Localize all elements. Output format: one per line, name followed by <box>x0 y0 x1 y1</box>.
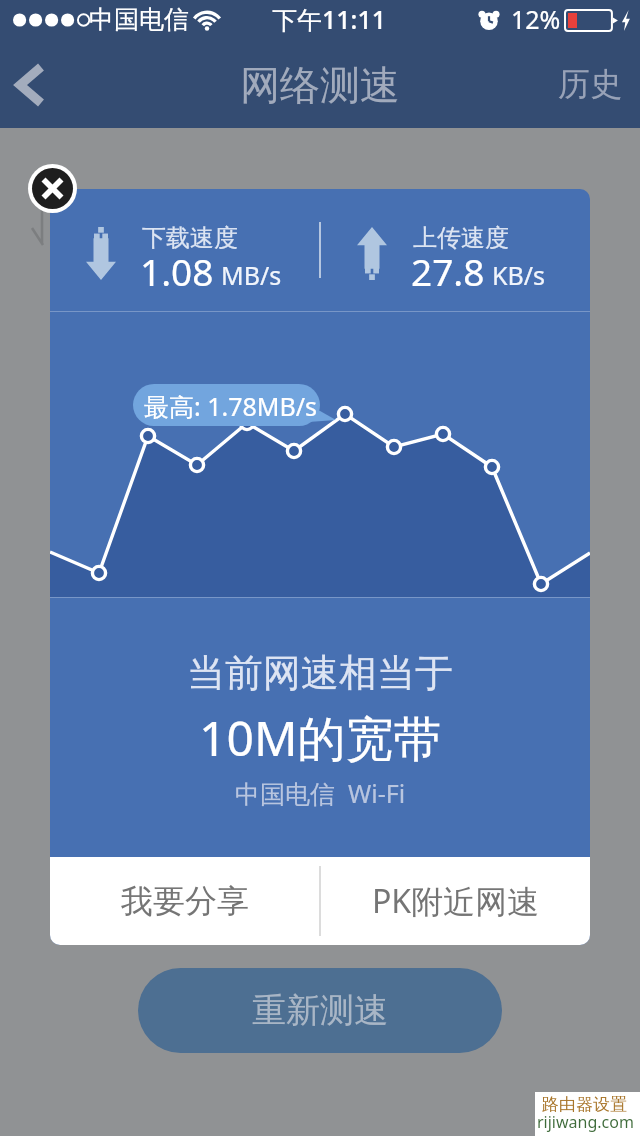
staticText: 当前网速相当于 <box>187 649 453 697</box>
staticText: MB/s <box>221 258 282 292</box>
staticText: 1.08 <box>140 246 214 296</box>
button[interactable]: Back <box>0 46 76 122</box>
button[interactable]: Close <box>28 164 78 214</box>
staticText: 我要分享 <box>121 881 249 921</box>
staticText: 历史 <box>558 64 622 104</box>
button[interactable]: 我要分享 <box>50 857 319 945</box>
staticText: 上传速度 <box>413 223 509 253</box>
button[interactable]: 重新测速 <box>138 968 502 1053</box>
staticText: 网络测速 <box>240 60 400 110</box>
staticText: PK附近网速 <box>372 879 540 923</box>
staticText: 重新测速 <box>252 989 388 1032</box>
staticText: 中国电信 <box>89 4 189 35</box>
staticText: 下载速度 <box>142 223 238 253</box>
staticText: 最高: 1.78MB/s <box>144 389 318 423</box>
staticText: 下午11:11 <box>272 2 387 36</box>
staticText: 27.8 <box>411 246 485 296</box>
staticText: 12% <box>511 2 561 36</box>
staticText: 中国电信 Wi-Fi <box>235 776 406 810</box>
staticText: 10M的宽带 <box>199 705 442 771</box>
button[interactable]: PK附近网速 <box>321 857 590 945</box>
staticText: rijiwang.com <box>537 1111 634 1133</box>
staticText: 路由器设置 <box>542 1094 627 1115</box>
button[interactable]: 历史 <box>558 64 622 104</box>
staticText: KB/s <box>492 258 546 292</box>
